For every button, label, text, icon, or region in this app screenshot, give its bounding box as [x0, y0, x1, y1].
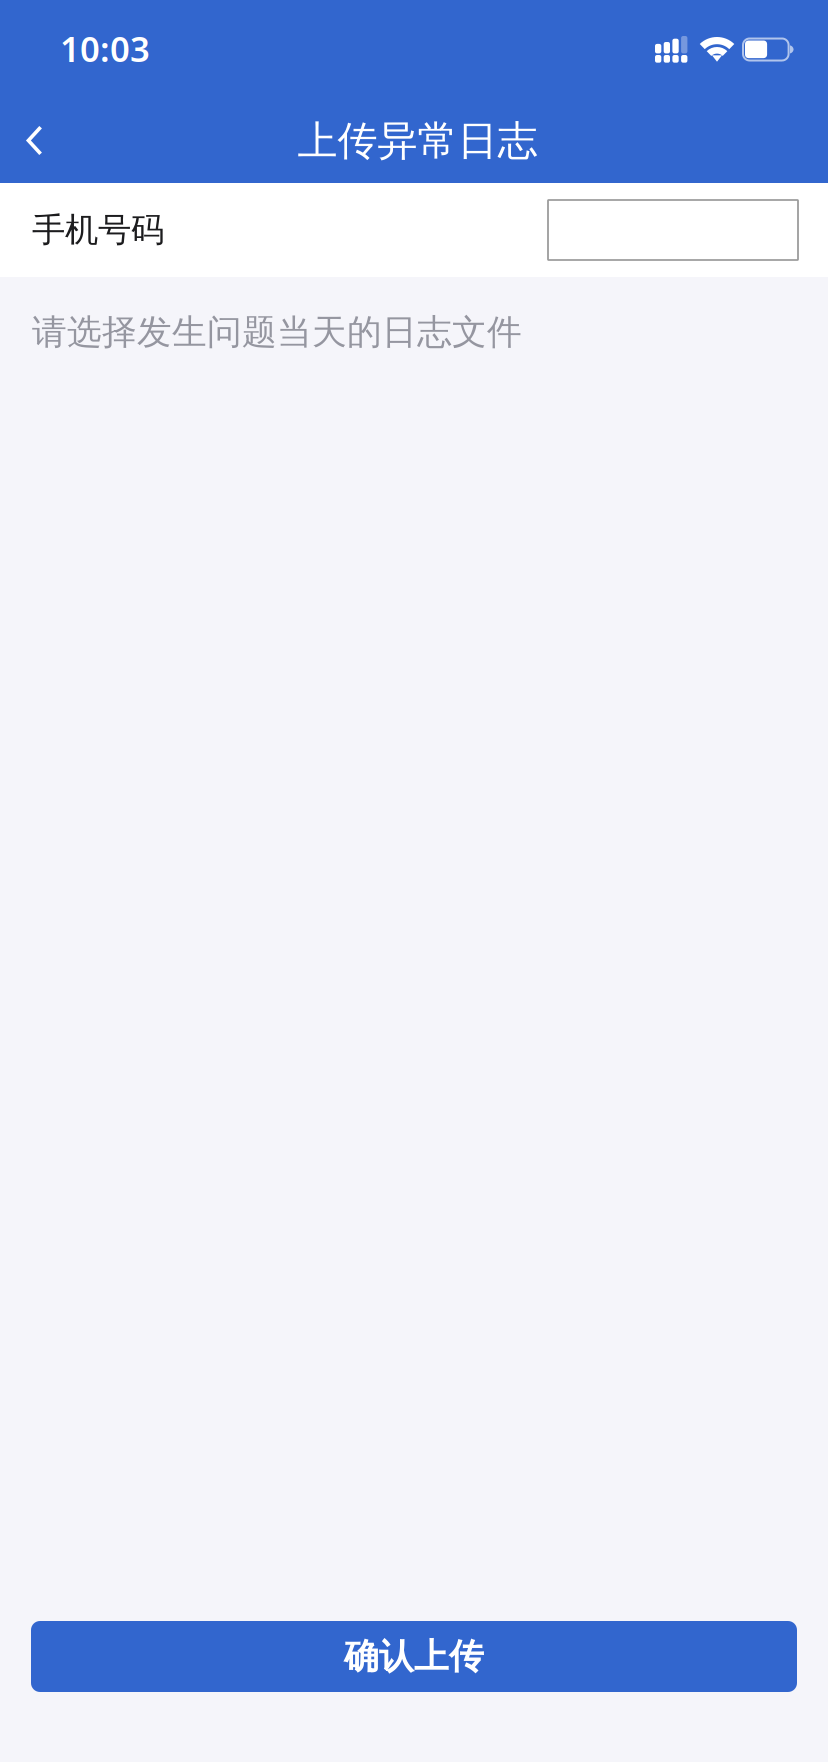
- button[interactable]: Back: [0, 99, 72, 178]
- staticText: 确认上传: [344, 1635, 484, 1678]
- staticText: 手机号码: [32, 209, 164, 250]
- staticText: 上传异常日志: [297, 116, 537, 165]
- staticText: 请选择发生问题当天的日志文件: [32, 311, 522, 354]
- button[interactable]: 确认上传: [31, 1621, 797, 1692]
- button[interactable]: Phone number field: [548, 200, 798, 260]
- staticText: 10:03: [60, 25, 150, 71]
